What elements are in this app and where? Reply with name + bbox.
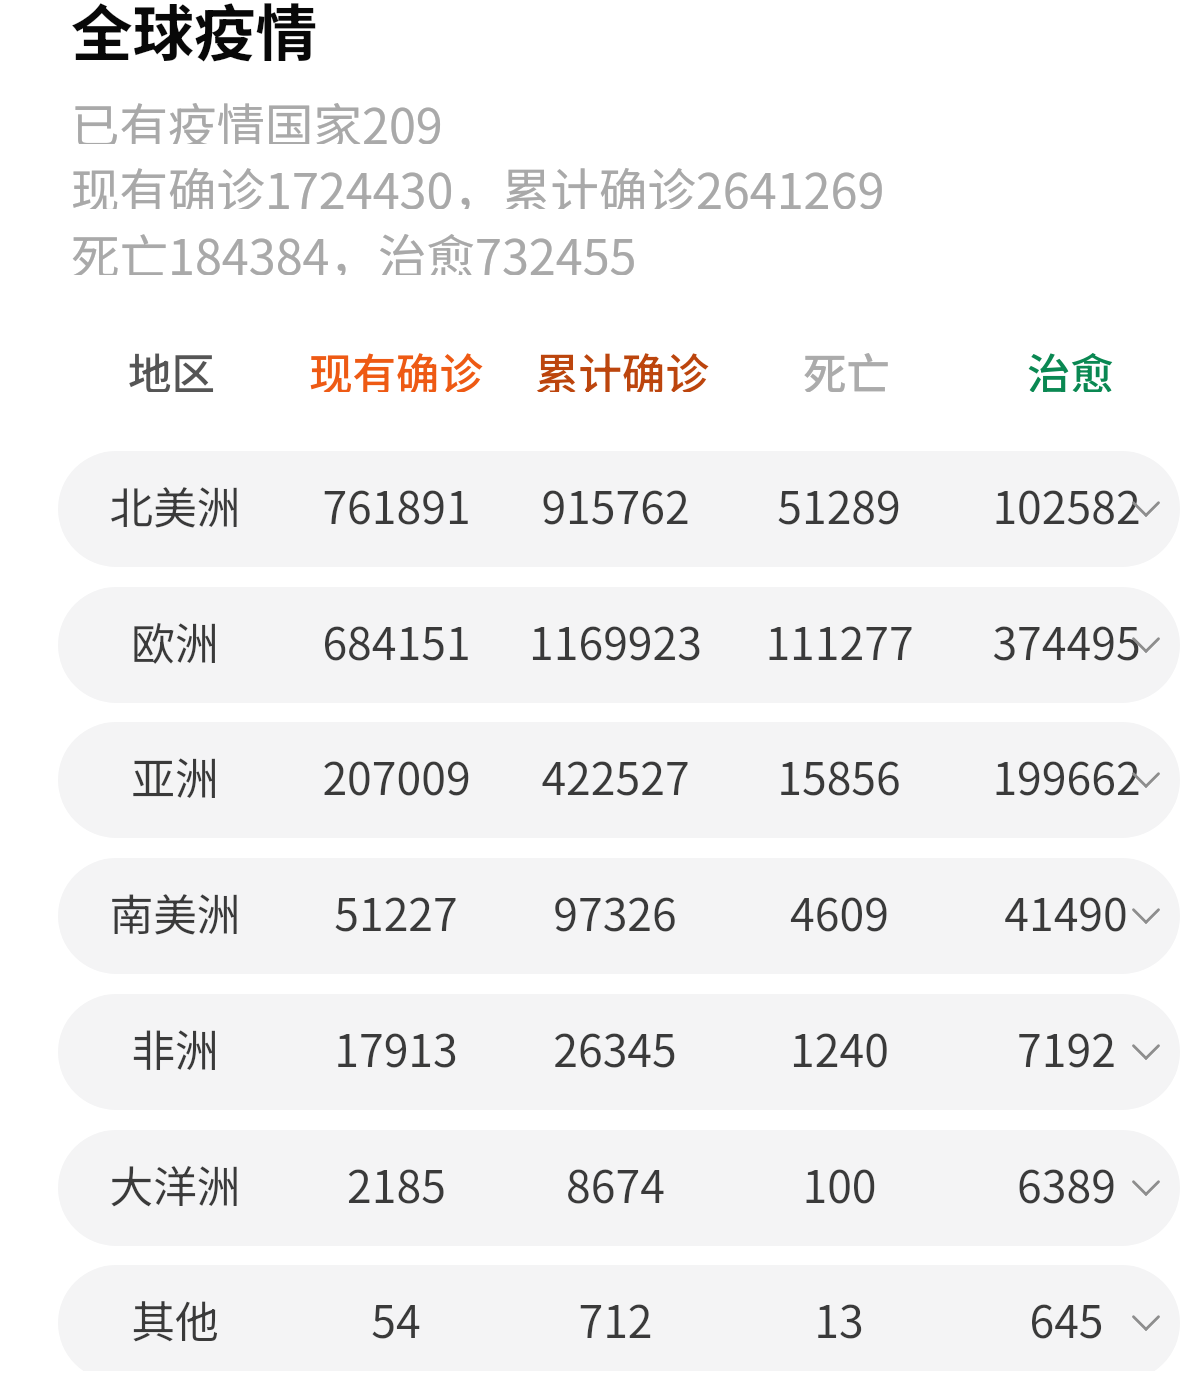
staticText: 915762 <box>541 472 690 536</box>
staticText: 17913 <box>334 1015 458 1079</box>
staticText: 现有确诊 <box>309 340 483 392</box>
staticText: 207009 <box>322 743 471 807</box>
button[interactable]: 欧洲 <box>58 587 1180 703</box>
staticText: 199662 <box>992 743 1141 807</box>
staticText: 2185 <box>347 1151 446 1215</box>
button[interactable]: 累计确诊 <box>462 340 782 392</box>
staticText: 欧洲 <box>131 609 219 672</box>
staticText: 422527 <box>541 743 690 807</box>
staticText: 102582 <box>992 472 1141 536</box>
staticText: 13 <box>814 1286 864 1350</box>
staticText: 15856 <box>777 743 901 807</box>
other: Expand region details <box>1128 627 1164 663</box>
staticText: 治愈 <box>1027 340 1114 392</box>
button[interactable]: 死亡 <box>686 340 1006 392</box>
staticText: 712 <box>578 1286 653 1350</box>
staticText: 1169923 <box>529 608 702 672</box>
staticText: 其他 <box>131 1287 219 1350</box>
other: Expand region details <box>1128 1305 1164 1341</box>
staticText: 大洋洲 <box>109 1152 241 1215</box>
staticText: 现有确诊1724430，累计确诊2641269 <box>71 153 885 209</box>
button[interactable]: 非洲 <box>58 994 1180 1110</box>
button[interactable]: 北美洲 <box>58 451 1180 567</box>
staticText: 6389 <box>1017 1151 1116 1215</box>
staticText: 111277 <box>765 608 914 672</box>
staticText: 761891 <box>322 472 471 536</box>
staticText: 死亡184384，治愈732455 <box>71 219 637 275</box>
staticText: 死亡 <box>803 340 890 392</box>
staticText: 100 <box>802 1151 877 1215</box>
staticText: 97326 <box>553 879 677 943</box>
other: Expand region details <box>1128 898 1164 934</box>
staticText: 南美洲 <box>109 880 241 943</box>
staticText: 亚洲 <box>131 744 219 807</box>
other: Expand region details <box>1128 762 1164 798</box>
button[interactable]: 大洋洲 <box>58 1130 1180 1246</box>
button[interactable]: 地区 <box>11 340 331 392</box>
staticText: 4609 <box>790 879 889 943</box>
button[interactable]: 亚洲 <box>58 722 1180 838</box>
button[interactable]: 现有确诊 <box>236 340 556 392</box>
staticText: 26345 <box>553 1015 677 1079</box>
staticText: 374495 <box>992 608 1141 672</box>
other: Expand region details <box>1128 1170 1164 1206</box>
other: Expand region details <box>1128 491 1164 527</box>
staticText: 684151 <box>322 608 471 672</box>
staticText: 8674 <box>566 1151 665 1215</box>
button[interactable]: 其他 <box>58 1265 1180 1371</box>
staticText: 51289 <box>777 472 901 536</box>
staticText: 1240 <box>790 1015 889 1079</box>
staticText: 已有疫情国家209 <box>71 88 443 144</box>
staticText: 7192 <box>1017 1015 1116 1079</box>
staticText: 全球疫情 <box>71 0 318 74</box>
staticText: 地区 <box>128 340 215 392</box>
staticText: 41490 <box>1004 879 1128 943</box>
staticText: 51227 <box>334 879 458 943</box>
other: Expand region details <box>1128 1034 1164 1070</box>
button[interactable]: 南美洲 <box>58 858 1180 974</box>
staticText: 北美洲 <box>109 473 241 536</box>
staticText: 54 <box>371 1286 421 1350</box>
button[interactable]: 治愈 <box>910 340 1198 392</box>
staticText: 累计确诊 <box>535 340 709 392</box>
staticText: 645 <box>1029 1286 1104 1350</box>
staticText: 非洲 <box>131 1016 219 1079</box>
